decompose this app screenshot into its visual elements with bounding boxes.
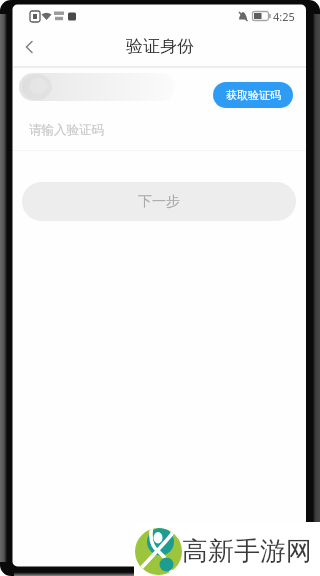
button[interactable]: 下一步 (22, 182, 296, 221)
staticText: 请输入验证码 (29, 122, 104, 138)
button[interactable] (13, 32, 47, 62)
staticText: 验证身份 (126, 36, 194, 57)
staticText: 获取验证码 (226, 88, 281, 102)
staticText: 下一步 (138, 193, 180, 211)
staticText: 高新手游网 (182, 535, 312, 568)
staticText: 4:25 (273, 9, 295, 24)
button[interactable]: 获取验证码 (213, 82, 293, 108)
